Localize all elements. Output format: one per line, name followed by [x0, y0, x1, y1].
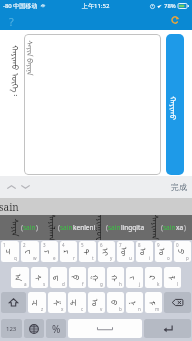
staticText: ᠱ — [50, 299, 64, 306]
staticText: p — [186, 255, 189, 261]
staticText: 78% — [164, 2, 176, 10]
staticText: f — [82, 281, 84, 287]
staticText: ( — [21, 223, 23, 232]
staticText: ᠯ — [165, 275, 179, 280]
button[interactable]: Space — [68, 319, 142, 338]
staticText: z — [41, 306, 44, 312]
button[interactable]: Next field — [18, 178, 32, 196]
staticText: ᠺ — [146, 275, 160, 280]
staticText: ᠭ — [89, 274, 103, 281]
button[interactable]: ᠰᠠᠶᠢᠬᠠᠨ — [144, 215, 192, 240]
staticText: l — [177, 281, 179, 287]
button[interactable]: ᠬᠠᠶᠢᠬᠤ — [166, 34, 184, 175]
staticText: e — [53, 255, 56, 261]
button[interactable]: 7 — [117, 241, 134, 262]
staticText: 0 — [176, 242, 179, 248]
staticText: 上午11:52 — [82, 2, 110, 10]
staticText: ᠢ — [100, 248, 114, 256]
button[interactable]: 5 — [79, 241, 96, 262]
staticText: ᠶ — [43, 250, 57, 254]
button[interactable]: Switch language — [24, 319, 44, 338]
button[interactable]: ᠵ — [126, 267, 143, 288]
staticText: ᠲ — [81, 249, 95, 255]
button[interactable]: ᠹ — [69, 267, 86, 288]
staticText: d — [62, 281, 65, 287]
staticText: ᠰᠠᠶᠢᠬᠠᠨ — [148, 215, 163, 240]
button[interactable]: 4 — [60, 241, 77, 262]
staticText: v — [100, 306, 103, 312]
staticText: ᠬᠠᠶᠢᠬᠤ — [168, 96, 182, 120]
staticText: ? — [9, 14, 14, 29]
staticText: sain — [23, 223, 36, 232]
button[interactable]: ᠪ — [107, 292, 124, 313]
staticText: j — [139, 281, 141, 287]
staticText: w — [33, 255, 37, 261]
button[interactable]: 1 — [1, 241, 19, 262]
button[interactable]: ᠰᠠᠶᠢᠨ — [0, 215, 48, 240]
button[interactable]: ᠤ — [88, 292, 105, 313]
staticText: m — [155, 306, 160, 312]
button[interactable]: Previous field — [4, 178, 18, 196]
staticText: ᠤ — [90, 299, 104, 307]
staticText: ᠰᠠᠶᠢᠯᠬᠠᠨ — [45, 215, 60, 240]
button[interactable]: ᠳ — [50, 267, 67, 288]
button[interactable]: 123 — [1, 319, 22, 338]
staticText: r — [73, 255, 75, 261]
staticText: ᠼ — [70, 299, 84, 307]
button[interactable]: 0 — [174, 241, 191, 262]
staticText: sain — [163, 223, 176, 232]
staticText: ᠴ — [3, 248, 17, 255]
staticText: b — [119, 306, 122, 312]
button[interactable]: 9 — [155, 241, 172, 262]
staticText: y — [110, 255, 113, 261]
button[interactable]: ᠨ — [126, 292, 143, 313]
staticText: ( — [161, 223, 163, 232]
button[interactable]: ᠭ — [88, 267, 105, 288]
staticText: xa — [176, 223, 184, 232]
staticText: sain — [108, 223, 121, 232]
staticText: ᠽ — [30, 299, 44, 306]
button[interactable]: Enter — [144, 319, 191, 338]
button[interactable]: 6 — [98, 241, 115, 262]
staticText: ᠳ — [52, 275, 66, 281]
button[interactable]: ᠰᠠᠶᠢᠨ ᠪᠠᠶᠢᠨᠠ — [24, 34, 161, 175]
button[interactable]: ᠼ — [68, 292, 86, 313]
staticText: 7 — [119, 242, 122, 248]
button[interactable]: ᠰ — [31, 267, 48, 288]
button[interactable]: ᠰᠠᠶᠢᠨᠭᠤᠸᠠ — [96, 215, 144, 240]
button[interactable]: ᠯ — [164, 267, 181, 288]
staticText: ᠰᠠᠶᠢᠨᠭᠤᠸᠠ — [93, 215, 108, 240]
staticText: 123 — [6, 325, 17, 333]
button[interactable]: 完成 — [171, 182, 187, 192]
staticText: g — [100, 281, 103, 287]
staticText: ᠮ — [146, 300, 160, 305]
staticText: k — [157, 281, 160, 287]
staticText: ᠬ — [108, 274, 122, 281]
button[interactable]: ᠠ — [11, 267, 29, 288]
button[interactable]: 2 — [21, 241, 39, 262]
staticText: a — [24, 281, 27, 287]
staticText: ᠨ — [127, 300, 141, 305]
button[interactable]: 8 — [136, 241, 153, 262]
staticText: t — [92, 255, 94, 261]
button[interactable]: ᠰᠠᠶᠢᠯᠬᠠᠨ — [48, 215, 96, 240]
staticText: 6 — [100, 242, 103, 248]
button[interactable]: ᠬ — [107, 267, 124, 288]
button[interactable]: Backspace — [164, 292, 191, 313]
staticText: n — [138, 306, 141, 312]
button[interactable]: Refresh — [168, 13, 182, 27]
staticText: ᠷ — [62, 250, 76, 254]
button[interactable]: 3 — [41, 241, 58, 262]
staticText: s — [43, 281, 46, 287]
staticText: lingqita — [121, 223, 144, 232]
button[interactable]: ᠮ — [145, 292, 162, 313]
button[interactable]: ᠱ — [48, 292, 66, 313]
button[interactable]: ᠬᠠᠶᠢᠬᠤ ᠦᠭᠡ᠄ — [8, 38, 24, 102]
button[interactable]: Help — [3, 13, 19, 29]
staticText: h — [119, 281, 122, 287]
button[interactable]: Shift — [1, 292, 26, 313]
staticText: 1 — [3, 242, 6, 248]
button[interactable]: % — [46, 319, 66, 338]
button[interactable]: ᠺ — [145, 267, 162, 288]
button[interactable]: ᠽ — [28, 292, 46, 313]
